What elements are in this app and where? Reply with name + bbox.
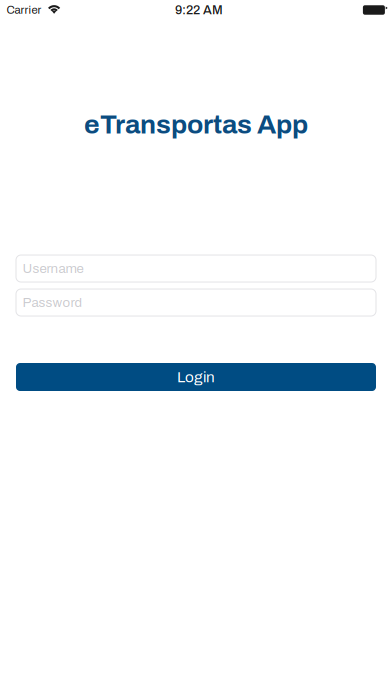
button[interactable]: Password (16, 289, 376, 316)
button[interactable]: Login (16, 363, 376, 391)
staticText: eTransportas App (84, 110, 308, 139)
staticText: Carrier (6, 4, 41, 16)
button[interactable]: Username (16, 255, 376, 282)
staticText: 9:22 AM (175, 3, 223, 17)
staticText: Login (177, 369, 215, 385)
staticText: Username (22, 261, 83, 276)
staticText: Password (22, 295, 82, 310)
